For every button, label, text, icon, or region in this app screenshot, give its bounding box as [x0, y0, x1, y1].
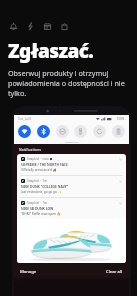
button[interactable]: Battery saver: [112, 125, 125, 138]
staticText: Manage: [20, 269, 37, 275]
button[interactable]: Store: [41, 20, 53, 32]
staticText: NIKE SB DUNK LOW: [21, 206, 54, 211]
button[interactable]: Auto rotate: [93, 125, 106, 138]
button[interactable]: Notifications: [7, 20, 19, 32]
staticText: Snapkid: [27, 201, 39, 205]
staticText: Snapkid: [27, 179, 39, 183]
staticText: Zgłaszać.: [8, 38, 94, 64]
button[interactable]: Snapkid: [17, 198, 126, 219]
staticText: NIKE DUNK "COLLEGE NAVY": [21, 184, 69, 189]
staticText: Clear all: [106, 269, 123, 275]
button[interactable]: Expand: [119, 180, 122, 183]
staticText: 100%: [117, 117, 125, 121]
staticText: SUPREME / THE NORTH FACE: [21, 162, 68, 167]
button[interactable]: Snapkid: [17, 154, 126, 175]
button[interactable]: [17, 219, 126, 263]
staticText: · now: [40, 157, 49, 161]
button[interactable]: Flashlight: [74, 125, 87, 138]
button[interactable]: Do not disturb: [56, 125, 69, 138]
staticText: · 1m: [40, 201, 48, 205]
staticText: Officially announced 🏕️: [21, 168, 57, 172]
button[interactable]: Wi-Fi: [18, 125, 31, 138]
button[interactable]: Bluetooth: [37, 125, 50, 138]
button[interactable]: Expand: [119, 158, 122, 161]
button[interactable]: Bag: [58, 20, 70, 32]
staticText: Notifications: [19, 147, 41, 152]
button[interactable]: Clear all: [106, 269, 123, 275]
staticText: Tue, Jul 6: [18, 117, 32, 121]
staticText: Just restocked, go go go ✨: [21, 190, 62, 194]
staticText: Snapkid: [27, 157, 39, 161]
button[interactable]: Snapkid: [17, 176, 126, 197]
staticText: Obserwuj produkty i otrzymuj powiadomien…: [8, 68, 125, 98]
staticText: · 1m: [40, 179, 48, 183]
button[interactable]: Manage: [20, 269, 37, 275]
staticText: "BHM" Raffle now open 🔥: [21, 212, 61, 216]
button[interactable]: Expand: [119, 202, 122, 205]
button[interactable]: Flash: [24, 20, 36, 32]
